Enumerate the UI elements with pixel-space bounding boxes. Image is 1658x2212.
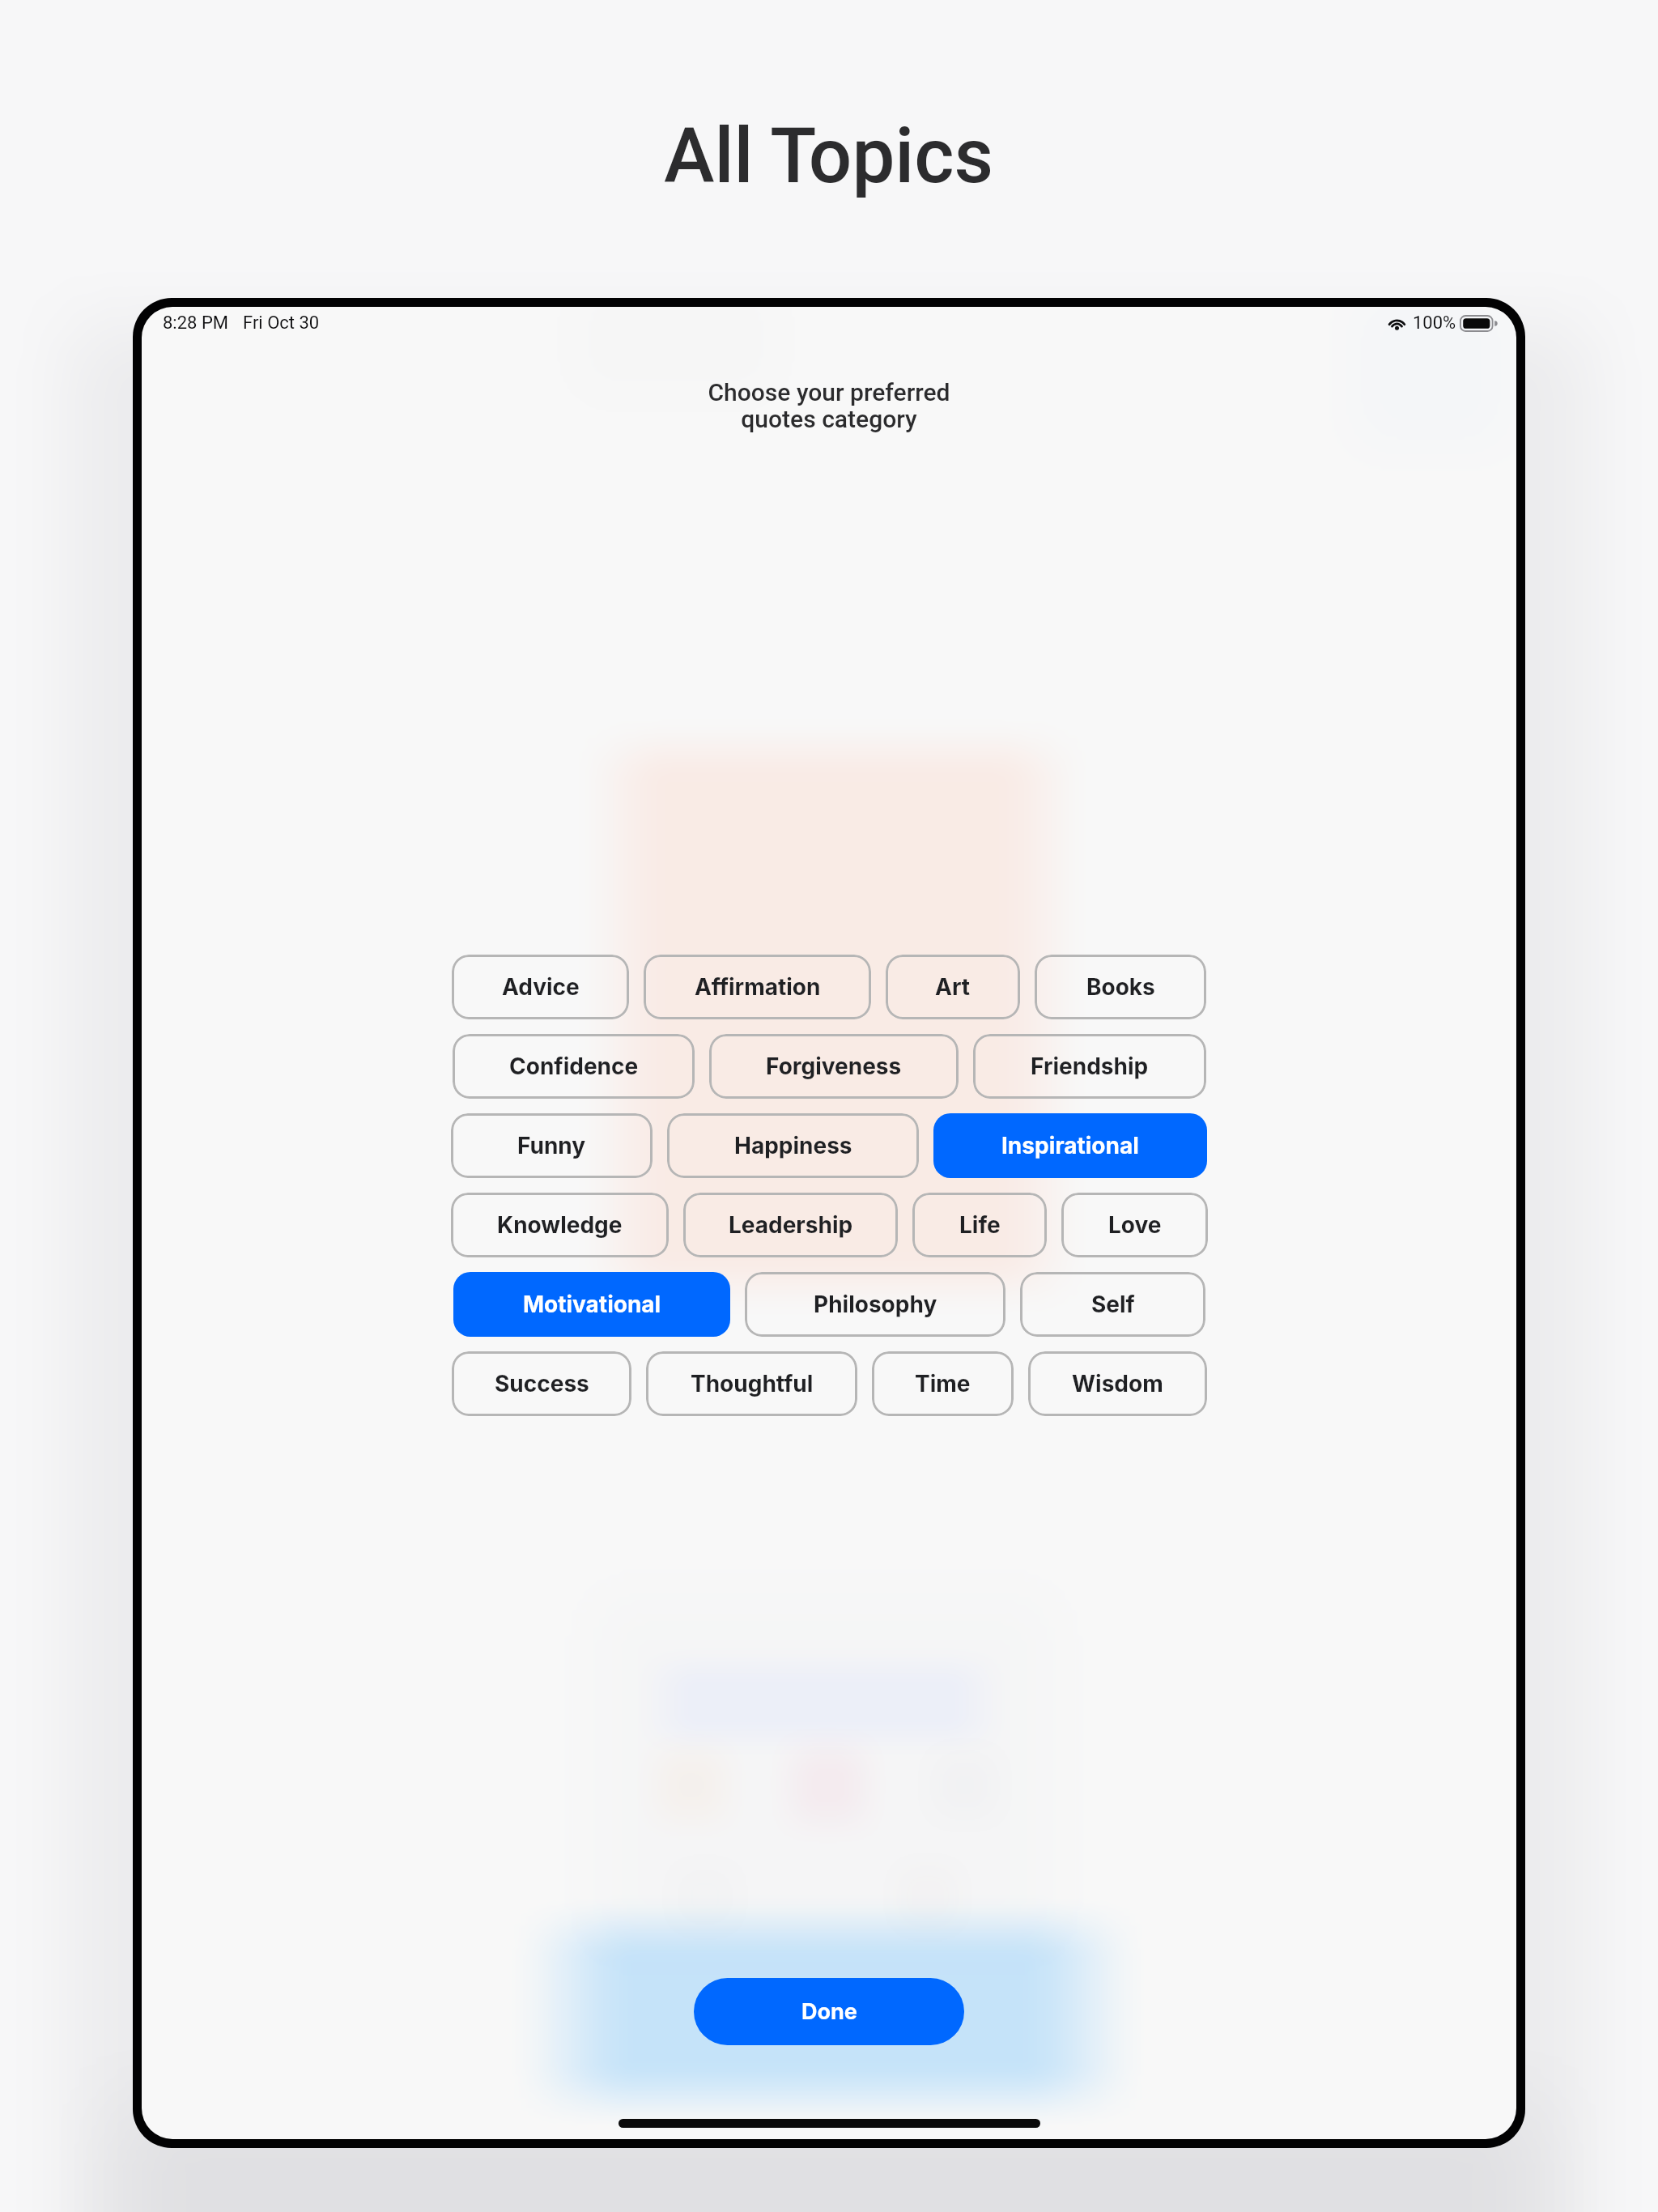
staticText: Friendship bbox=[1031, 1053, 1149, 1080]
button[interactable]: Life bbox=[912, 1193, 1047, 1257]
other: Battery 100 percent bbox=[1460, 316, 1496, 331]
button[interactable]: Confidence bbox=[453, 1034, 695, 1099]
button[interactable]: Affirmation bbox=[644, 955, 871, 1019]
staticText: Advice bbox=[502, 973, 580, 1001]
staticText: Love bbox=[1108, 1211, 1162, 1239]
staticText: 8:28 PM bbox=[163, 313, 228, 334]
button[interactable]: Thoughtful bbox=[646, 1351, 857, 1416]
staticText: Self bbox=[1091, 1291, 1135, 1318]
button[interactable]: Knowledge bbox=[451, 1193, 669, 1257]
other: Wi-Fi bbox=[1387, 317, 1407, 330]
staticText: Art bbox=[935, 973, 971, 1001]
staticText: Confidence bbox=[509, 1053, 639, 1080]
button[interactable]: Self bbox=[1020, 1272, 1205, 1337]
button[interactable]: Leadership bbox=[683, 1193, 898, 1257]
staticText: Done bbox=[801, 1998, 857, 2025]
staticText: Knowledge bbox=[497, 1211, 623, 1239]
staticText: Choose your preferred quotes category bbox=[708, 378, 950, 433]
staticText: Success bbox=[495, 1370, 589, 1397]
button[interactable]: Time bbox=[872, 1351, 1014, 1416]
button[interactable]: Done bbox=[694, 1978, 964, 2045]
staticText: Fri Oct 30 bbox=[243, 313, 320, 334]
button[interactable]: Wisdom bbox=[1028, 1351, 1207, 1416]
staticText: Leadership bbox=[729, 1211, 853, 1239]
staticText: Books bbox=[1086, 973, 1155, 1001]
staticText: Thoughtful bbox=[691, 1370, 814, 1397]
button[interactable]: Motivational bbox=[453, 1272, 730, 1337]
button[interactable]: Inspirational bbox=[933, 1113, 1207, 1178]
button[interactable]: Art bbox=[886, 955, 1020, 1019]
button[interactable]: Funny bbox=[451, 1113, 653, 1178]
staticText: Life bbox=[959, 1211, 1001, 1239]
staticText: Affirmation bbox=[695, 973, 821, 1001]
button[interactable]: Philosophy bbox=[745, 1272, 1005, 1337]
staticText: Wisdom bbox=[1072, 1370, 1163, 1397]
staticText: 100% bbox=[1413, 313, 1456, 334]
button[interactable]: Books bbox=[1035, 955, 1206, 1019]
button[interactable]: Advice bbox=[452, 955, 629, 1019]
staticText: Forgiveness bbox=[766, 1053, 902, 1080]
button[interactable]: Love bbox=[1061, 1193, 1208, 1257]
staticText: All Topics bbox=[664, 112, 994, 201]
button[interactable]: Happiness bbox=[667, 1113, 919, 1178]
staticText: Happiness bbox=[734, 1132, 852, 1159]
button[interactable]: Success bbox=[452, 1351, 631, 1416]
staticText: Inspirational bbox=[1001, 1132, 1139, 1159]
button[interactable]: Friendship bbox=[973, 1034, 1206, 1099]
staticText: Time bbox=[915, 1370, 971, 1397]
button[interactable]: Forgiveness bbox=[709, 1034, 959, 1099]
staticText: Philosophy bbox=[814, 1291, 937, 1318]
staticText: Funny bbox=[517, 1132, 586, 1159]
staticText: Motivational bbox=[523, 1291, 661, 1318]
